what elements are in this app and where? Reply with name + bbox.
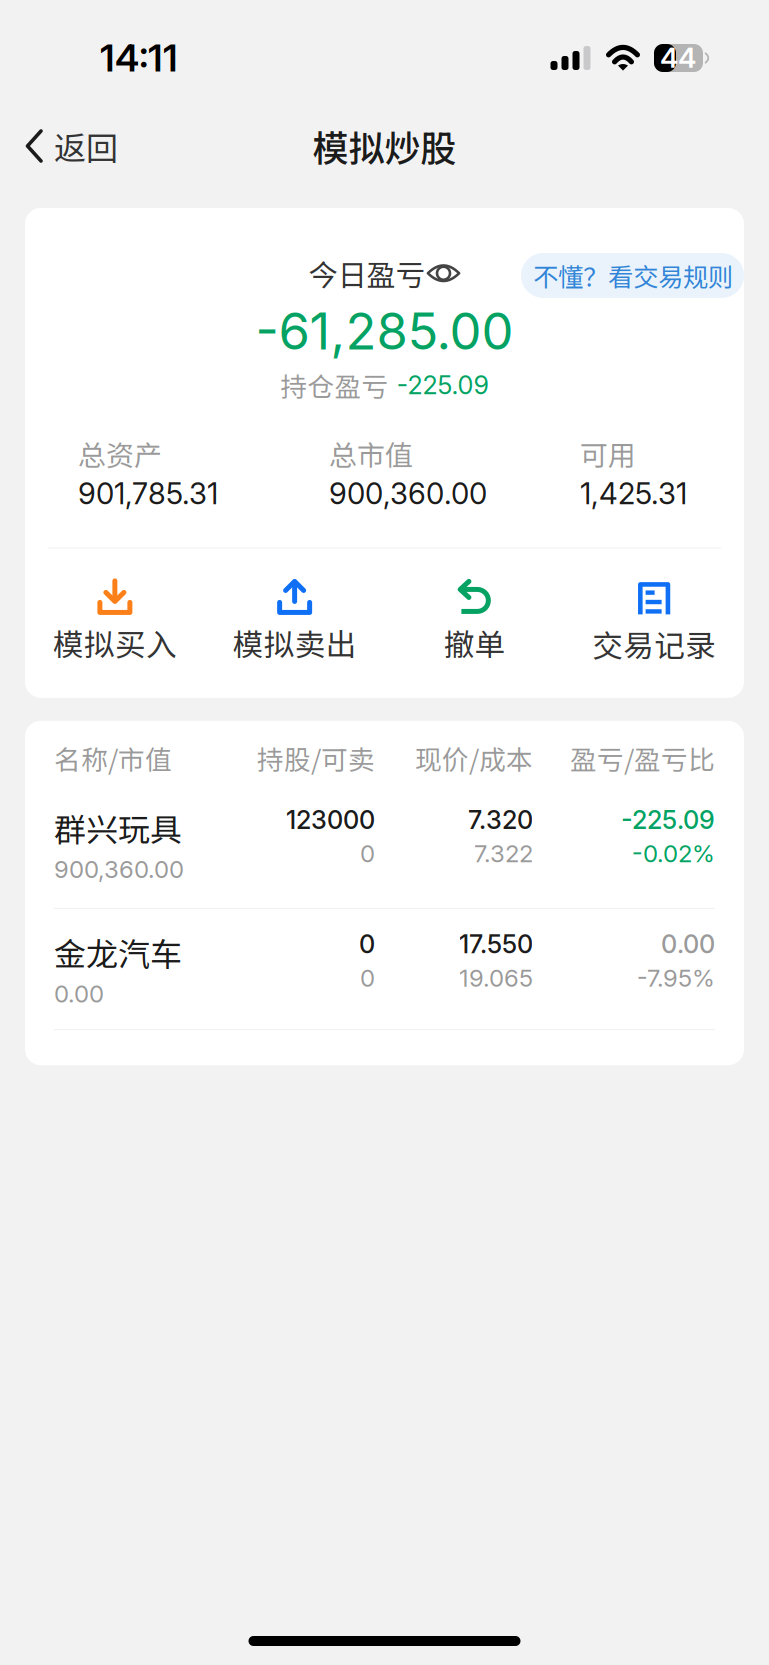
staticText: 19.065 [459,963,533,992]
staticText: 群兴玩具 [54,804,182,851]
staticText: 现价/成本 [415,739,533,777]
staticText: 7.320 [468,804,533,835]
staticText: 今日盈亏 [308,252,424,294]
staticText: 123000 [286,804,375,835]
staticText: -0.02% [632,839,715,868]
staticText: -61,285.00 [255,300,513,362]
staticText: -225.09 [621,804,715,835]
staticText: 撤单 [443,620,505,665]
staticText: 14:11 [100,35,178,81]
staticText: 901,785.31 [78,476,218,511]
staticText: 盈亏/盈亏比 [570,739,715,777]
staticText: 总资产 [78,433,162,474]
staticText: 交易记录 [592,621,716,666]
staticText: 900,360.00 [329,476,487,511]
staticText: -7.95% [637,963,715,992]
button[interactable]: 群兴玩具 [54,777,715,908]
staticText: -225.09 [396,370,488,400]
staticText: 持仓盈亏 [280,366,388,404]
staticText: 总市值 [329,433,413,474]
button[interactable]: 撤单 [384,579,564,665]
button[interactable]: 交易记录 [564,579,744,666]
staticText: 模拟炒股 [312,120,456,172]
staticText: 0 [360,839,375,868]
staticText: 持股/可卖 [257,739,375,777]
staticText: 不懂？看交易规则 [533,257,733,294]
staticText: 0 [360,963,375,992]
staticText: 模拟买入 [53,620,177,665]
button[interactable]: 金龙汽车 [54,909,715,1029]
staticText: 44 [660,41,696,74]
staticText: 1,425.31 [580,476,687,511]
staticText: 0.00 [54,979,104,1008]
button[interactable]: 模拟买入 [25,579,205,665]
staticText: 7.322 [474,839,533,868]
staticText: 900,360.00 [54,855,184,884]
staticText: 名称/市值 [54,739,172,777]
staticText: 0.00 [661,929,715,959]
staticText: 17.550 [459,929,533,959]
staticText: 返回 [54,123,118,169]
staticText: 0 [359,929,375,959]
staticText: 模拟卖出 [233,620,357,665]
button[interactable]: 返回 [0,111,136,181]
button[interactable]: 模拟卖出 [205,579,385,665]
button[interactable]: 不懂？看交易规则 [521,253,744,298]
staticText: 金龙汽车 [54,929,182,975]
staticText: 可用 [580,433,636,474]
